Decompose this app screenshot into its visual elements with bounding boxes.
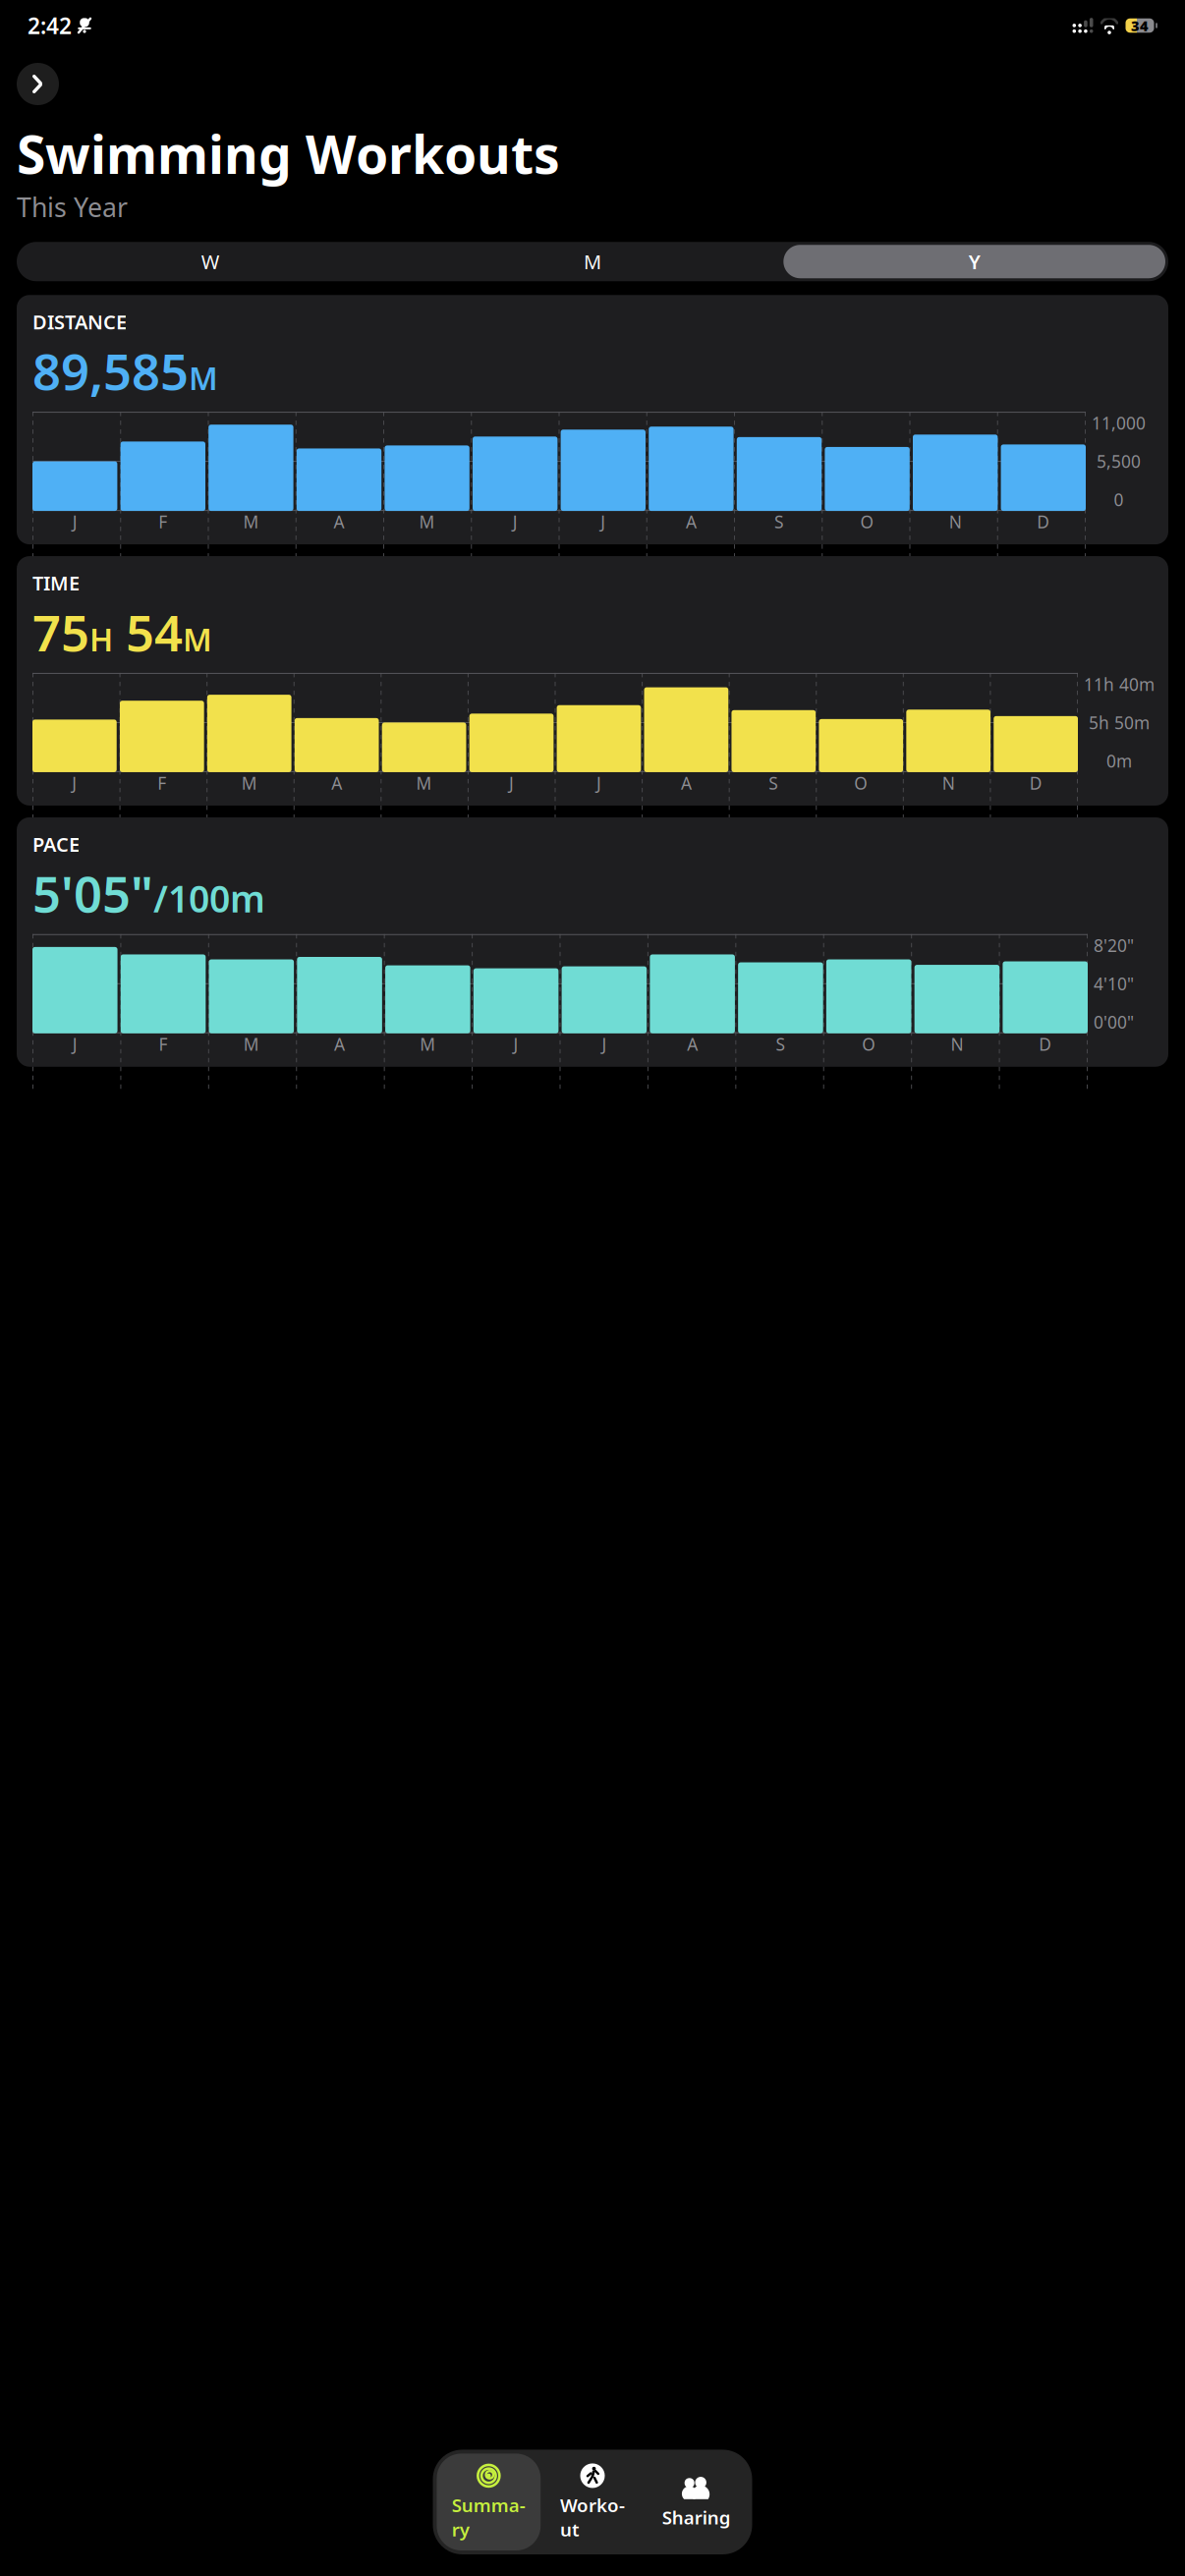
staticText: J xyxy=(596,772,601,794)
button[interactable]: Sharing xyxy=(644,2466,748,2538)
staticText: S xyxy=(774,510,784,533)
staticText: 8'20" xyxy=(1094,934,1134,957)
staticText: 54 xyxy=(113,599,183,665)
staticText: J xyxy=(73,1033,77,1055)
staticText: J xyxy=(513,1033,518,1055)
staticText: 0m xyxy=(1106,750,1132,772)
staticText: 89,585 xyxy=(32,338,189,404)
button[interactable]: W xyxy=(20,245,402,278)
button[interactable]: Workout xyxy=(541,2454,644,2550)
staticText: 11h 40m xyxy=(1084,673,1155,695)
staticText: A xyxy=(686,510,697,533)
staticText: M xyxy=(183,618,212,660)
staticText: A xyxy=(334,510,344,533)
staticText: A xyxy=(334,1033,345,1055)
staticText: 0'00" xyxy=(1094,1011,1134,1033)
staticText: Summary xyxy=(452,2493,525,2542)
staticText: 0 xyxy=(1114,488,1124,511)
staticText: A xyxy=(681,772,692,794)
staticText: F xyxy=(158,510,167,533)
staticText: J xyxy=(509,772,514,794)
staticText: D xyxy=(1039,1033,1052,1055)
button[interactable]: Back xyxy=(17,63,59,105)
button[interactable]: M xyxy=(402,245,784,278)
staticText: J xyxy=(602,1033,607,1055)
staticText: Y xyxy=(969,249,980,275)
staticText: PACE xyxy=(32,831,80,857)
staticText: /100m xyxy=(153,874,265,923)
button[interactable]: PACE xyxy=(17,817,1168,1067)
staticText: A xyxy=(331,772,342,794)
staticText: 4'10" xyxy=(1094,972,1134,995)
button[interactable]: DISTANCE xyxy=(17,295,1168,544)
staticText: D xyxy=(1037,510,1050,533)
staticText: M xyxy=(241,772,257,794)
staticText: F xyxy=(159,1033,168,1055)
staticText: O xyxy=(854,772,868,794)
staticText: M xyxy=(243,1033,259,1055)
staticText: 5'05" xyxy=(32,860,153,926)
staticText: M xyxy=(420,1033,436,1055)
button[interactable]: Y xyxy=(783,245,1165,278)
staticText: M xyxy=(243,510,259,533)
staticText: DISTANCE xyxy=(32,309,127,335)
staticText: S xyxy=(769,772,779,794)
staticText: J xyxy=(72,772,77,794)
staticText: J xyxy=(601,510,606,533)
staticText: S xyxy=(776,1033,785,1055)
staticText: O xyxy=(862,1033,876,1055)
staticText: 2:42 xyxy=(28,11,72,40)
button[interactable]: Summary xyxy=(437,2454,541,2550)
staticText: TIME xyxy=(32,570,80,596)
staticText: 5,500 xyxy=(1097,450,1141,473)
staticText: This Year xyxy=(17,189,128,224)
staticText: O xyxy=(860,510,874,533)
staticText: 34 xyxy=(1131,16,1149,35)
staticText: A xyxy=(687,1033,698,1055)
staticText: 11,000 xyxy=(1092,412,1146,434)
staticText: M xyxy=(416,772,432,794)
staticText: J xyxy=(513,510,518,533)
staticText: M xyxy=(189,357,218,399)
button[interactable]: TIME xyxy=(17,556,1168,806)
staticText: N xyxy=(949,510,962,533)
staticText: 5h 50m xyxy=(1089,711,1150,734)
staticText: J xyxy=(72,510,77,533)
staticText: D xyxy=(1029,772,1042,794)
staticText: 75 xyxy=(32,599,89,665)
staticText: N xyxy=(942,772,955,794)
staticText: M xyxy=(419,510,435,533)
staticText: H xyxy=(89,618,113,660)
staticText: F xyxy=(158,772,166,794)
staticText: M xyxy=(584,249,601,275)
staticText: Workout xyxy=(560,2493,625,2542)
staticText: Sharing xyxy=(662,2505,731,2529)
staticText: Swimming Workouts xyxy=(17,119,560,188)
staticText: N xyxy=(951,1033,963,1055)
staticText: W xyxy=(201,249,220,275)
